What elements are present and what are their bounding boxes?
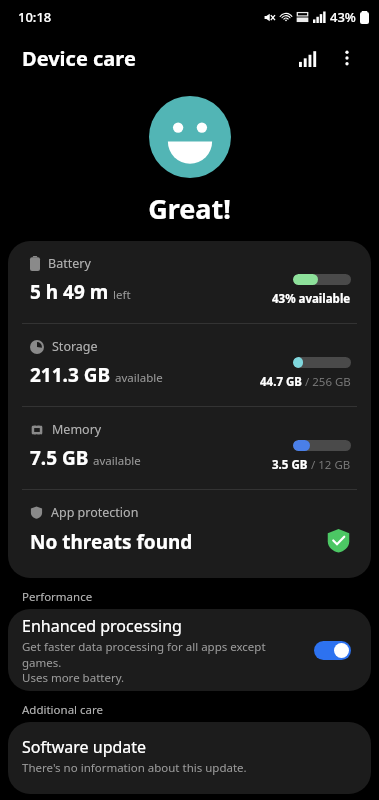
staticText: Get faster data processing for all apps …: [22, 639, 291, 685]
button[interactable]: Battery: [8, 241, 371, 323]
staticText: Battery: [48, 255, 91, 272]
staticText: 7.5 GB: [30, 445, 89, 471]
staticText: 211.3 GB: [30, 362, 111, 388]
staticText: Enhanced processing: [22, 615, 182, 637]
staticText: / 12 GB: [308, 457, 351, 473]
button[interactable]: Storage: [8, 324, 371, 406]
staticText: Memory: [52, 421, 102, 438]
button[interactable]: App protection: [8, 490, 371, 572]
staticText: / 256 GB: [302, 374, 351, 390]
staticText: 43%: [330, 8, 356, 26]
button[interactable]: Enhanced processing: [8, 609, 371, 691]
staticText: 5 h 49 m: [30, 279, 109, 305]
button[interactable]: Software update: [8, 722, 371, 794]
staticText: No threats found: [30, 529, 193, 555]
staticText: left: [113, 287, 131, 303]
staticText: 44.7 GB: [260, 374, 302, 390]
staticText: Device care: [22, 45, 136, 72]
staticText: available: [115, 370, 163, 386]
staticText: App protection: [51, 504, 139, 521]
button[interactable]: Memory: [8, 407, 371, 489]
staticText: Storage: [52, 338, 98, 355]
staticText: Great!: [148, 190, 231, 227]
button[interactable]: Enhanced processing toggle: [314, 641, 351, 660]
staticText: available: [93, 453, 141, 469]
staticText: Additional care: [22, 702, 104, 718]
staticText: Performance: [22, 589, 93, 605]
staticText: 43% available: [272, 291, 351, 307]
staticText: 10:18: [18, 8, 52, 26]
button[interactable]: No threats found: [326, 528, 351, 553]
staticText: Software update: [22, 736, 147, 758]
button[interactable]: Usage statistics: [287, 38, 327, 78]
staticText: There's no information about this update…: [22, 760, 247, 776]
staticText: 3.5 GB: [272, 457, 308, 473]
button[interactable]: More options: [327, 38, 367, 78]
